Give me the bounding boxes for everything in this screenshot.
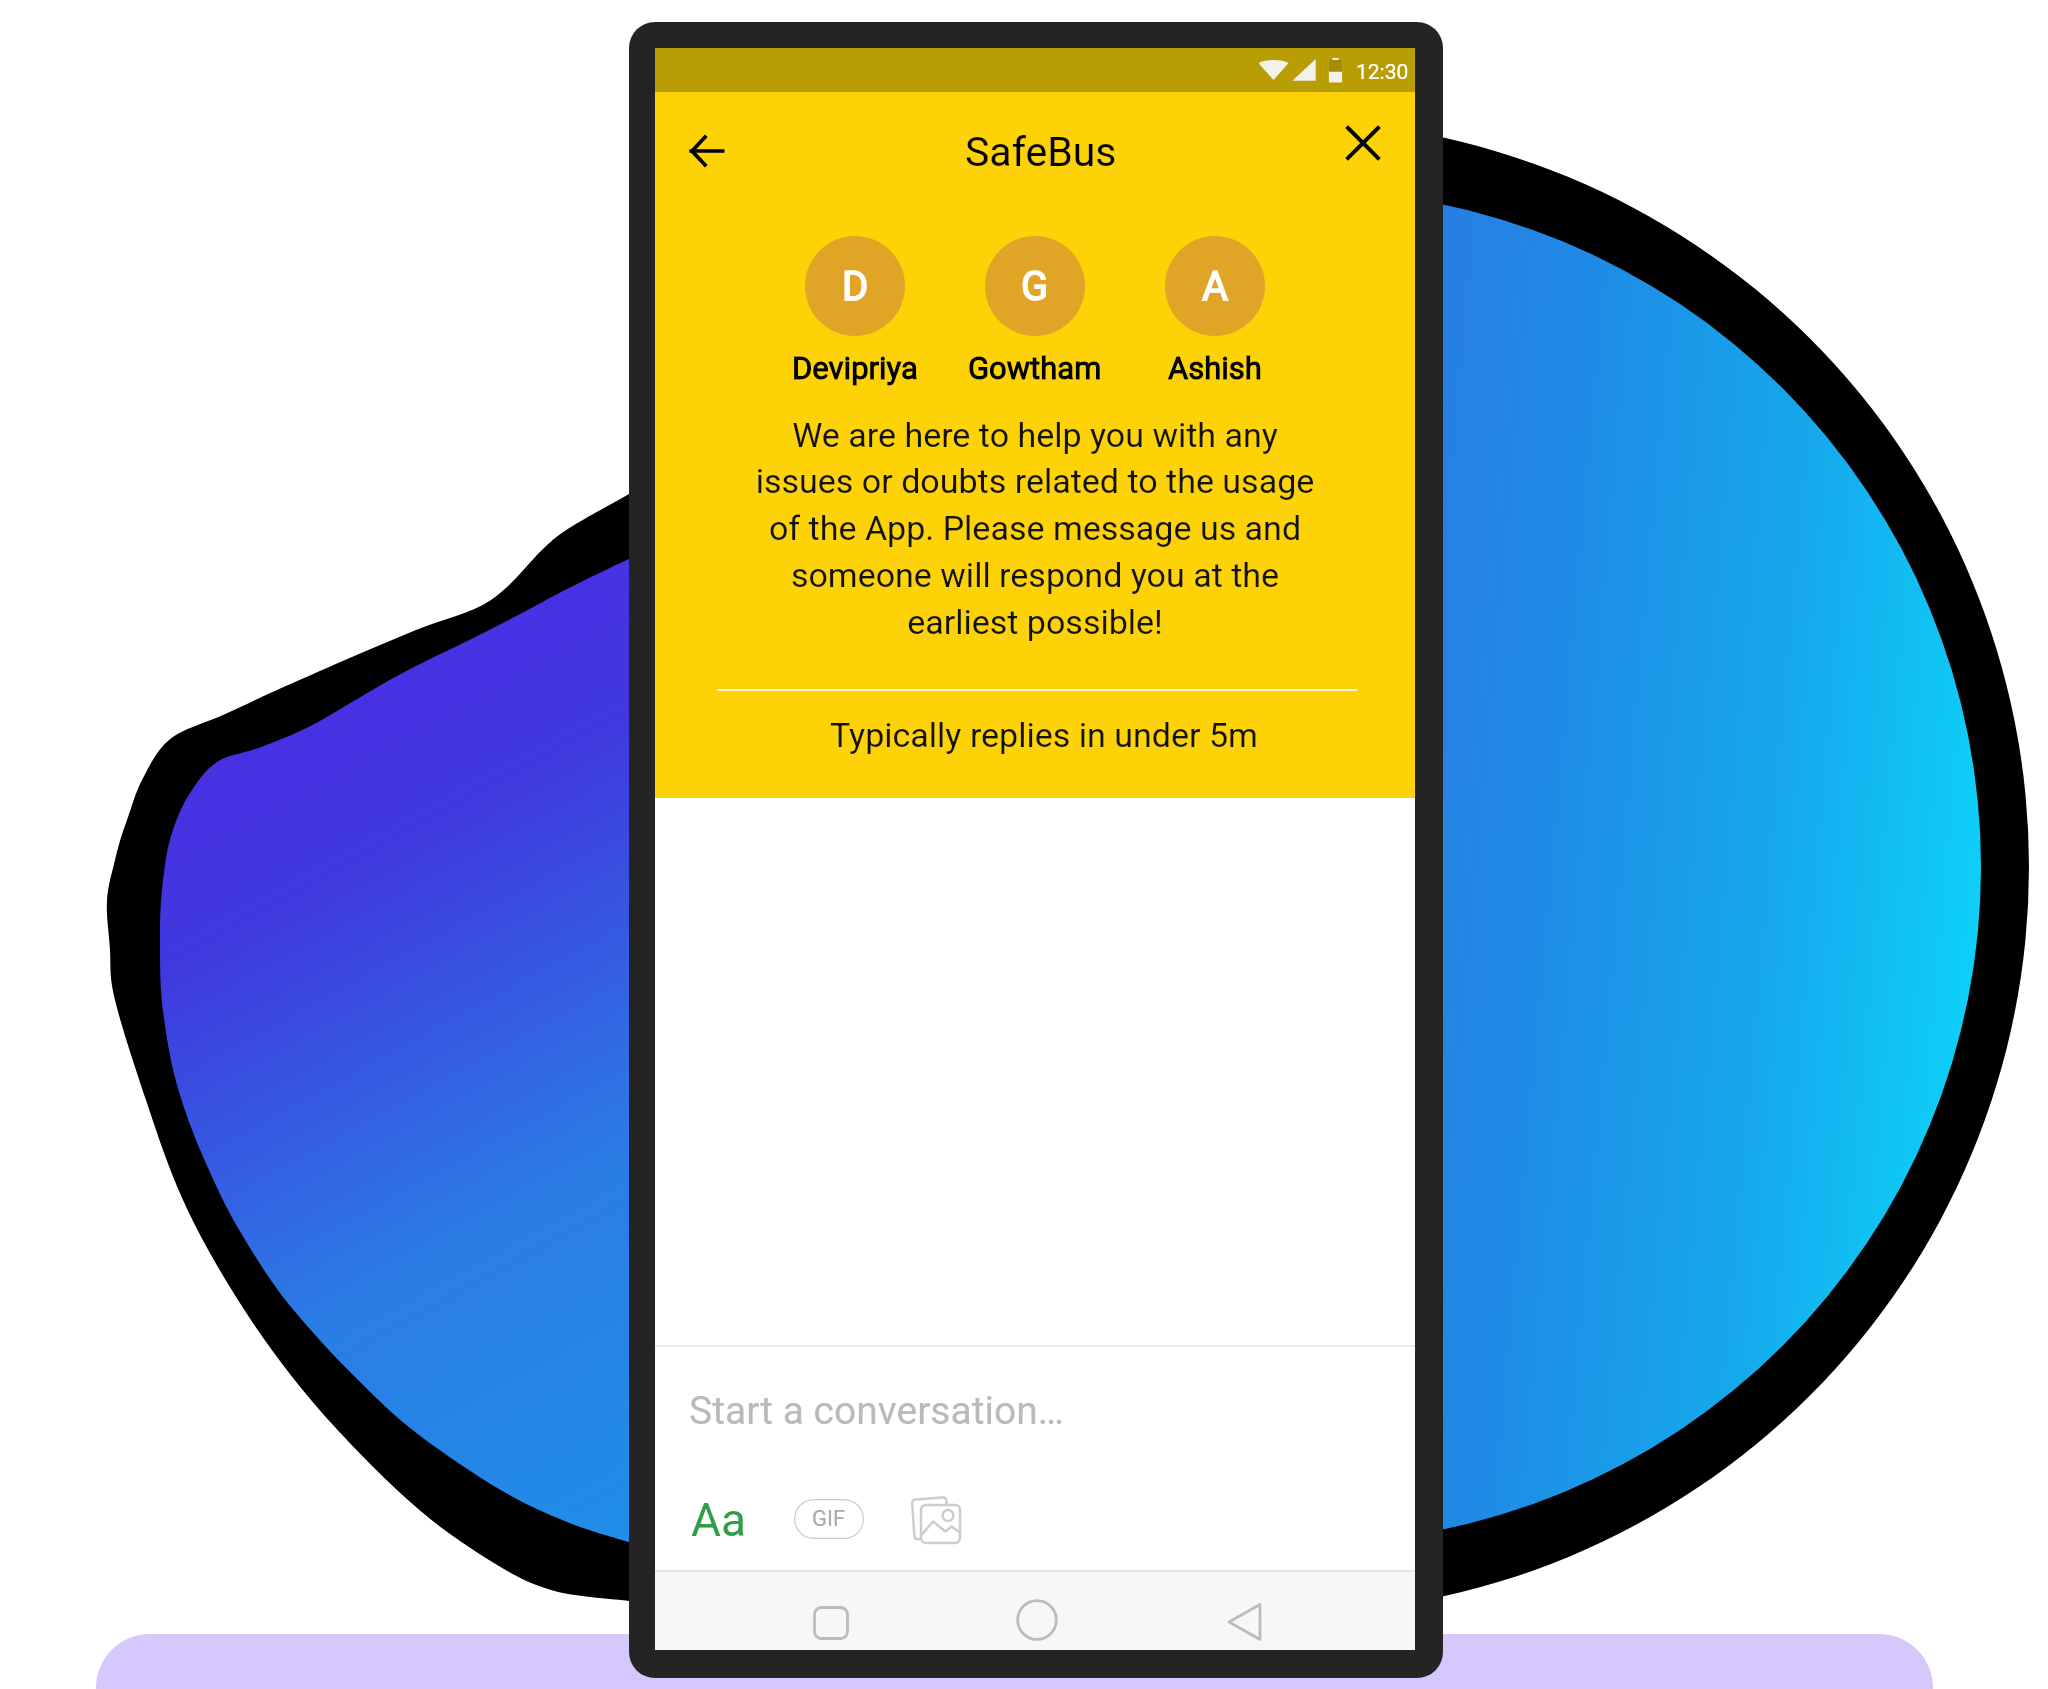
staticText: 12:30 [1356, 60, 1409, 85]
staticText: Ashish [1168, 350, 1262, 386]
button[interactable]: D [765, 236, 945, 386]
staticText: G [1021, 263, 1049, 310]
button[interactable]: Aa [691, 1493, 747, 1545]
staticText: Typically replies in under 5m [830, 715, 1258, 755]
staticText: Devipriya [792, 350, 918, 386]
button[interactable]: A [1125, 236, 1305, 386]
staticText: Gowtham [968, 350, 1102, 386]
button[interactable]: Close [1340, 120, 1386, 166]
button[interactable]: Add an image [910, 1497, 962, 1547]
staticText: Aa [691, 1493, 747, 1545]
button[interactable]: Back [1223, 1601, 1267, 1645]
button[interactable]: Start a conversation… [655, 1368, 1415, 1456]
staticText: GIF [812, 1506, 846, 1532]
button[interactable]: Send a GIF [794, 1499, 864, 1539]
button[interactable]: Home [1014, 1597, 1060, 1643]
button[interactable]: Recent apps [809, 1603, 853, 1647]
staticText: A [1202, 263, 1229, 310]
button[interactable]: Back [683, 128, 731, 176]
staticText: Start a conversation… [689, 1388, 1064, 1434]
staticText: D [842, 263, 869, 310]
staticText: SafeBus [965, 128, 1117, 176]
button[interactable]: G [945, 236, 1125, 386]
staticText: We are here to help you with any issues … [749, 415, 1321, 643]
